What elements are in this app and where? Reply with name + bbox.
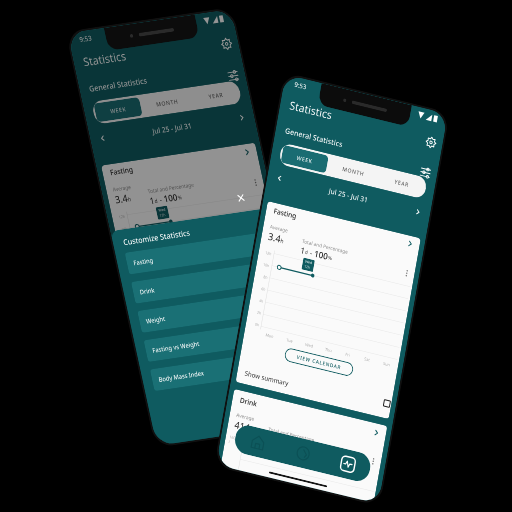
staticText: Fasting [109,148,245,177]
staticText: Jul 25 - Jul 31 [151,120,193,136]
button[interactable]: Fasting vs Weight [143,319,293,362]
staticText: 12h [118,213,126,220]
staticText: Weight [145,298,272,325]
button[interactable]: More options [400,266,413,279]
staticText: Show summary [146,333,192,349]
staticText: d [304,248,309,256]
button[interactable]: More options [249,176,262,189]
staticText: YEAR [394,178,410,189]
button[interactable]: Drink [278,434,328,473]
staticText: 1 [299,244,306,257]
staticText: Statistics [288,97,334,122]
staticText: General Statistics [284,125,344,149]
staticText: Tue [286,337,293,344]
button[interactable]: MONTH [327,154,379,188]
button[interactable]: Drink [239,395,380,438]
staticText: Total and Percentage [301,237,349,255]
button[interactable]: Home [233,423,283,462]
staticText: Fri [345,351,351,358]
button[interactable]: Close [233,190,249,206]
staticText: ml [249,426,257,435]
staticText: % [177,193,183,201]
staticText: 12h [265,250,272,256]
staticText: 8h [263,274,268,280]
staticText: Tue [171,291,179,298]
staticText: 12h [159,212,166,218]
button[interactable]: Previous [272,170,287,187]
staticText: 6h [261,286,266,292]
button[interactable]: VIEW CALENDAR [284,347,354,377]
button[interactable]: VIEW CALENDAR [174,292,246,317]
button[interactable]: Fasting [125,231,274,275]
staticText: 1600ml [228,434,242,447]
staticText: Thu [325,346,333,353]
staticText: % [327,254,333,262]
staticText: MONTH [342,165,365,178]
staticText: Fasting [132,240,259,267]
staticText: 2h [134,276,139,282]
button[interactable]: WEEK [280,145,329,173]
staticText: 3.4 [114,191,129,207]
staticText: MONTH [155,97,179,108]
staticText: 9:53 [294,80,307,91]
staticText: Wed [305,341,314,349]
button[interactable]: YEAR [189,80,242,110]
button[interactable]: Fasting [273,206,414,249]
staticText: Average [236,411,255,422]
staticText: Drink [239,395,374,437]
button[interactable]: More options [367,454,379,468]
button[interactable]: Body Mass Index [150,348,299,391]
staticText: 8h [126,238,131,244]
staticText: - [307,247,315,258]
staticText: General Statistics [88,75,148,94]
button[interactable]: Settings [216,34,236,54]
staticText: 0h [255,321,260,327]
staticText: 4h [131,263,137,269]
button[interactable]: Settings [421,132,440,152]
staticText: Statistics [82,47,128,69]
staticText: Wed [305,259,312,266]
button[interactable]: Next [234,109,250,126]
staticText: d [154,197,159,205]
staticText: WEEK [109,105,127,115]
staticText: Jul 25 - Jul 31 [328,186,369,205]
staticText: h [127,195,132,203]
staticText: 1 [148,194,156,207]
staticText: WEEK [296,154,313,165]
staticText: 414 [233,418,251,434]
button[interactable]: Drink [131,260,280,304]
staticText: Customize Statistics [122,227,191,247]
staticText: Body Mass Index [158,357,285,383]
button[interactable]: Next [410,203,426,220]
staticText: 100 [313,248,329,262]
staticText: Mon [265,332,274,339]
button[interactable]: Show summary [380,396,392,410]
button[interactable]: Filter statistics [223,66,243,86]
button[interactable]: MONTH [140,87,194,117]
staticText: Show summary [244,368,289,388]
button[interactable]: Reset order [264,219,278,233]
button[interactable]: Previous [95,130,111,146]
staticText: Sat [250,280,256,286]
staticText: 0h [137,288,142,294]
staticText: Total and Percentage [147,181,195,195]
staticText: - [157,194,165,205]
staticText: Sun [269,277,277,283]
button[interactable]: Weight [137,290,287,333]
staticText: Sun [383,360,391,367]
staticText: Wed [190,288,199,295]
staticText: Fasting [273,206,408,248]
staticText: 2h [257,310,262,315]
button[interactable]: WEEK [93,97,143,122]
staticText: 3.4 [267,230,282,246]
button[interactable]: Filter statistics [416,162,435,183]
staticText: Drink [139,269,266,296]
button[interactable]: Statistics [323,444,373,484]
button[interactable]: Fasting [109,147,251,177]
staticText: Average [112,183,132,193]
staticText: 10h [263,262,270,268]
button[interactable]: YEAR [376,166,428,200]
